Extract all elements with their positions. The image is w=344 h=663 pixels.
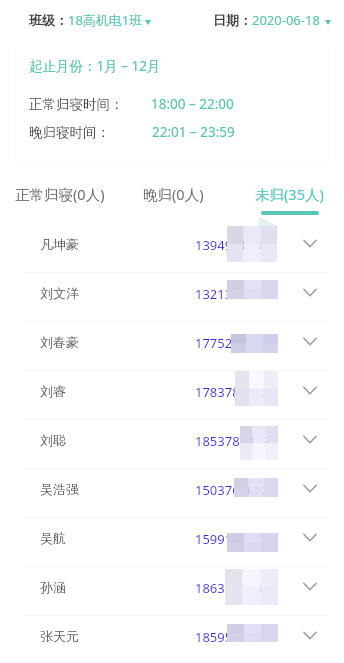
staticText: 吴航 [40,530,66,546]
staticText: 刘睿 [40,383,66,399]
button[interactable]: 晚归(0人) [116,172,230,220]
button[interactable]: 正常归寝(0人) [3,172,117,220]
staticText: 正常归寝(0人) [15,184,105,204]
other: 展开 [302,335,318,348]
staticText: 日期： [213,12,252,28]
staticText: 晚归(0人) [143,184,204,204]
staticText: 张天元 [40,628,79,644]
button[interactable]: 未归(35人) [232,172,344,220]
button[interactable]: 班级： [29,11,151,29]
staticText: 班级： [29,12,68,28]
staticText: 正常归寝时间： [29,96,124,113]
staticText: 13949012345 [195,236,277,254]
button[interactable]: 刘睿 [0,371,344,420]
other: 展开 [302,482,318,495]
staticText: 13213012345 [195,285,277,303]
button[interactable]: 刘文洋 [0,273,344,322]
other: 展开 [302,580,318,593]
other: 展开 [302,433,318,446]
staticText: 刘春豪 [40,334,79,350]
staticText: 15991012345 [195,530,277,548]
staticText: 18631012345 [195,579,277,597]
other: 展开 [302,384,318,397]
staticText: 22:01 – 23:59 [152,123,235,141]
other: 展开 [302,531,318,544]
staticText: 起止月份：1月 – 12月 [29,57,161,75]
button[interactable]: 张天元 [0,616,344,663]
staticText: 15037610123 [195,481,277,499]
staticText: 未归(35人) [255,184,324,204]
staticText: 2020-06-18 [252,11,320,29]
staticText: 18高机电1班 [68,11,143,29]
staticText: 吴浩强 [40,481,79,497]
button[interactable]: 日期： [213,11,331,29]
staticText: 17752012345 [195,334,277,352]
button[interactable]: 吴航 [0,518,344,567]
staticText: 孙涵 [40,579,66,595]
button[interactable]: 刘春豪 [0,322,344,371]
staticText: 刘聪 [40,432,66,448]
other: 展开 [302,286,318,299]
staticText: 晚归寝时间： [29,124,110,141]
button[interactable]: 孙涵 [0,567,344,616]
button[interactable]: 吴浩强 [0,469,344,518]
staticText: 刘文洋 [40,285,79,301]
button[interactable]: 凡坤豪 [0,224,344,273]
other: 展开 [302,629,318,642]
staticText: 18:00 – 22:00 [151,95,234,113]
button[interactable]: 刘聪 [0,420,344,469]
staticText: 17837801234 [195,383,277,401]
other: 展开 [302,237,318,250]
staticText: 18595401234 [195,628,277,646]
staticText: 凡坤豪 [40,236,79,252]
staticText: 18537820123 [195,432,277,450]
